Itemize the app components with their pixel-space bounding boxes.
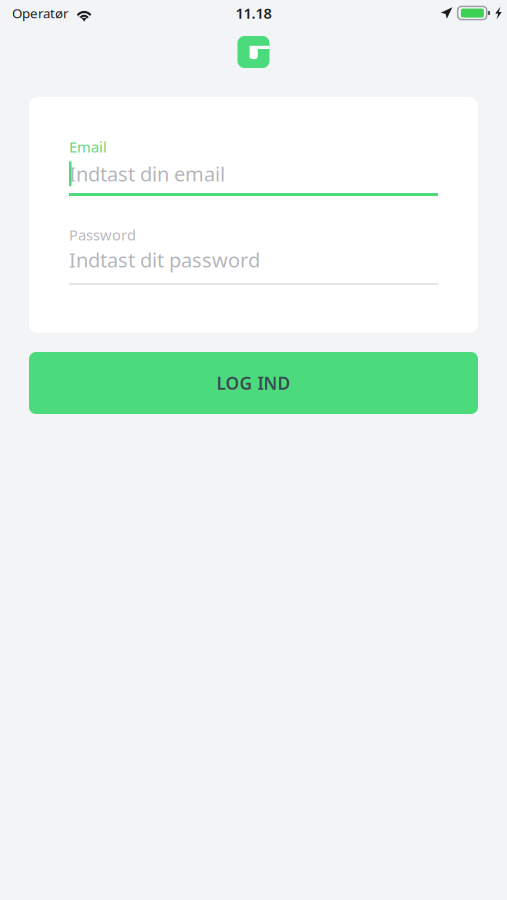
staticText: Password (69, 225, 136, 244)
staticText: Operatør (12, 4, 69, 22)
staticText: Indtast dit password (69, 246, 260, 273)
staticText: 11.18 (235, 3, 271, 23)
button[interactable]: LOG IND (29, 352, 478, 414)
staticText: Indtast din email (69, 160, 225, 187)
staticText: Email (69, 137, 107, 156)
staticText: LOG IND (216, 371, 290, 394)
